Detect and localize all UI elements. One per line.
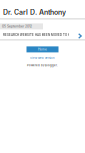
staticText: Home xyxy=(38,47,47,51)
staticText: Dr. Carl D. Anthony xyxy=(3,8,66,16)
button[interactable]: Home xyxy=(26,46,58,52)
staticText: View web version xyxy=(30,56,55,60)
button[interactable]: RESEARCH WEBSITE HAS BEEN MOVED TO HERE xyxy=(0,30,85,39)
staticText: 05 September 2012 xyxy=(2,24,32,28)
staticText: Powered by Blogger. xyxy=(27,64,58,67)
staticText: RESEARCH WEBSITE HAS BEEN MOVED TO HERE xyxy=(3,33,76,37)
button[interactable]: View web version xyxy=(30,56,55,60)
